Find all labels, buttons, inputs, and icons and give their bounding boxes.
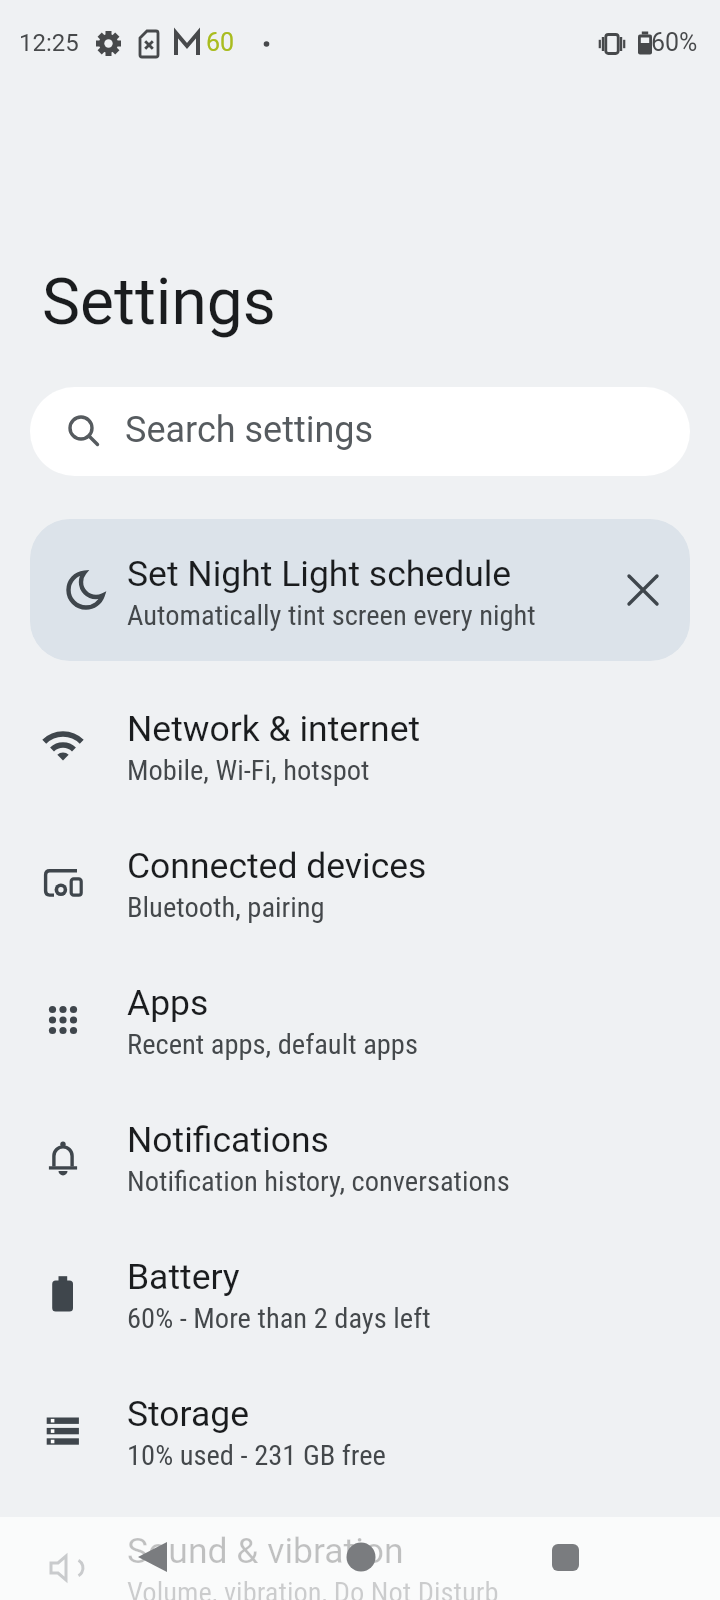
staticText: Recent apps, default apps (127, 1028, 418, 1061)
button[interactable]: Battery (0, 1225, 720, 1362)
staticText: Sound & vibration (127, 1530, 404, 1572)
staticText: 60% (651, 28, 698, 57)
button[interactable]: Sound & vibration (0, 1499, 720, 1600)
button[interactable]: Search settings (30, 387, 690, 476)
staticText: Connected devices (127, 845, 427, 887)
button[interactable] (480, 1517, 720, 1600)
button[interactable] (619, 566, 667, 614)
staticText: 10% used - 231 GB free (127, 1439, 386, 1472)
button[interactable]: Connected devices (0, 814, 720, 951)
staticText: 60% - More than 2 days left (127, 1302, 431, 1335)
staticText: Notification history, conversations (127, 1165, 510, 1198)
button[interactable]: Storage (0, 1362, 720, 1499)
staticText: Automatically tint screen every night (127, 599, 536, 632)
staticText: 60 (206, 28, 235, 57)
button[interactable]: Apps (0, 951, 720, 1088)
button[interactable]: Set Night Light schedule (30, 519, 690, 661)
button[interactable] (240, 1517, 480, 1600)
button[interactable]: Notifications (0, 1088, 720, 1225)
staticText: Search settings (125, 409, 374, 451)
staticText: Battery (127, 1256, 240, 1298)
staticText: Volume, vibration, Do Not Disturb (127, 1576, 499, 1600)
staticText: Bluetooth, pairing (127, 891, 325, 924)
staticText: Settings (42, 265, 276, 340)
staticText: Storage (127, 1393, 249, 1435)
staticText: Network & internet (127, 708, 421, 750)
staticText: Notifications (127, 1119, 329, 1161)
button[interactable] (0, 1517, 240, 1600)
staticText: Mobile, Wi-Fi, hotspot (127, 754, 370, 787)
staticText: 12:25 (19, 29, 79, 57)
button[interactable]: Network & internet (0, 677, 720, 814)
staticText: Set Night Light schedule (127, 553, 512, 595)
staticText: Apps (127, 982, 209, 1024)
